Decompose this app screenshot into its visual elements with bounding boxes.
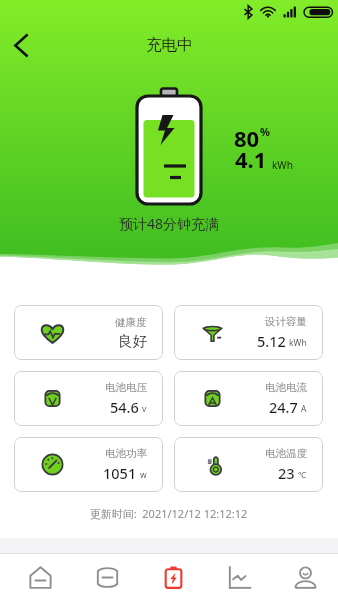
button[interactable]: Charging	[140, 554, 206, 600]
button[interactable]: 电池温度	[174, 437, 323, 492]
button[interactable]: Statistics	[206, 554, 272, 600]
staticText: 设计容量	[265, 315, 307, 328]
staticText: %	[260, 124, 270, 139]
staticText: 80	[234, 123, 260, 153]
button[interactable]: Home	[7, 554, 74, 600]
staticText: 充电中	[146, 35, 193, 55]
staticText: 4.1	[235, 144, 267, 174]
staticText: 更新时间: 2021/12/12 12:12:12	[14, 506, 323, 521]
staticText: 电池电压	[105, 381, 147, 394]
staticText: 24.7	[269, 397, 298, 417]
staticText: 电池功率	[105, 447, 147, 460]
button[interactable]: Back	[3, 27, 39, 63]
staticText: kWh	[272, 158, 293, 172]
staticText: 5.12	[257, 331, 286, 351]
staticText: A	[301, 403, 307, 415]
button[interactable]: 电池功率	[14, 437, 163, 492]
staticText: 电池电流	[265, 381, 307, 394]
staticText: 1051	[103, 463, 137, 483]
staticText: 健康度	[115, 316, 147, 329]
staticText: 电池温度	[265, 447, 307, 460]
staticText: 良好	[118, 332, 147, 350]
button[interactable]: 电池电压	[14, 371, 163, 426]
staticText: v	[142, 403, 147, 415]
staticText: w	[140, 469, 147, 481]
staticText: 23	[278, 463, 295, 483]
staticText: 预计48分钟充满	[0, 214, 338, 233]
staticText: 54.6	[110, 397, 139, 417]
button[interactable]: Device	[74, 554, 140, 600]
staticText: kWh	[289, 337, 307, 349]
button[interactable]: 健康度	[14, 305, 163, 360]
button[interactable]: 设计容量	[174, 305, 323, 360]
staticText: ℃	[298, 469, 307, 481]
button[interactable]: 电池电流	[174, 371, 323, 426]
button[interactable]: Profile	[272, 554, 338, 600]
